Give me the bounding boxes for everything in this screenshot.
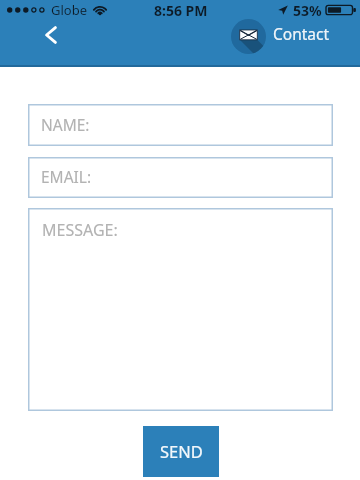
button[interactable]: Contact [231,19,330,54]
staticText: NAME: [41,114,90,135]
button[interactable]: NAME: [28,104,333,146]
staticText: Globe [51,1,88,19]
staticText: 8:56 PM [154,1,208,20]
button[interactable]: Back [36,23,66,47]
staticText: MESSAGE: [42,219,118,241]
staticText: EMAIL: [41,166,92,187]
staticText: 53% [293,1,322,20]
staticText: SEND [160,440,203,462]
staticText: Contact [273,23,330,44]
button[interactable]: EMAIL: [28,157,333,198]
button[interactable]: MESSAGE: [28,208,333,411]
button[interactable]: SEND [143,426,219,477]
